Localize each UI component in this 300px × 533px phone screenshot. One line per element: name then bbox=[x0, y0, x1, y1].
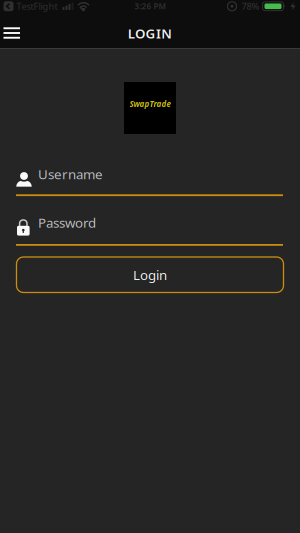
staticText: SwapTrade bbox=[129, 99, 170, 109]
staticText: TestFlight bbox=[16, 0, 57, 12]
button[interactable]: Username bbox=[16, 166, 283, 196]
staticText: 3:26 PM bbox=[134, 1, 165, 11]
staticText: LOGIN bbox=[128, 24, 172, 42]
button[interactable]: Password bbox=[16, 214, 283, 246]
button[interactable] bbox=[0, 0, 20, 39]
staticText: Username bbox=[38, 165, 103, 183]
staticText: 78% bbox=[241, 0, 259, 12]
staticText: Login bbox=[133, 266, 167, 284]
button[interactable]: Login bbox=[16, 257, 283, 292]
staticText: Password bbox=[38, 214, 96, 231]
